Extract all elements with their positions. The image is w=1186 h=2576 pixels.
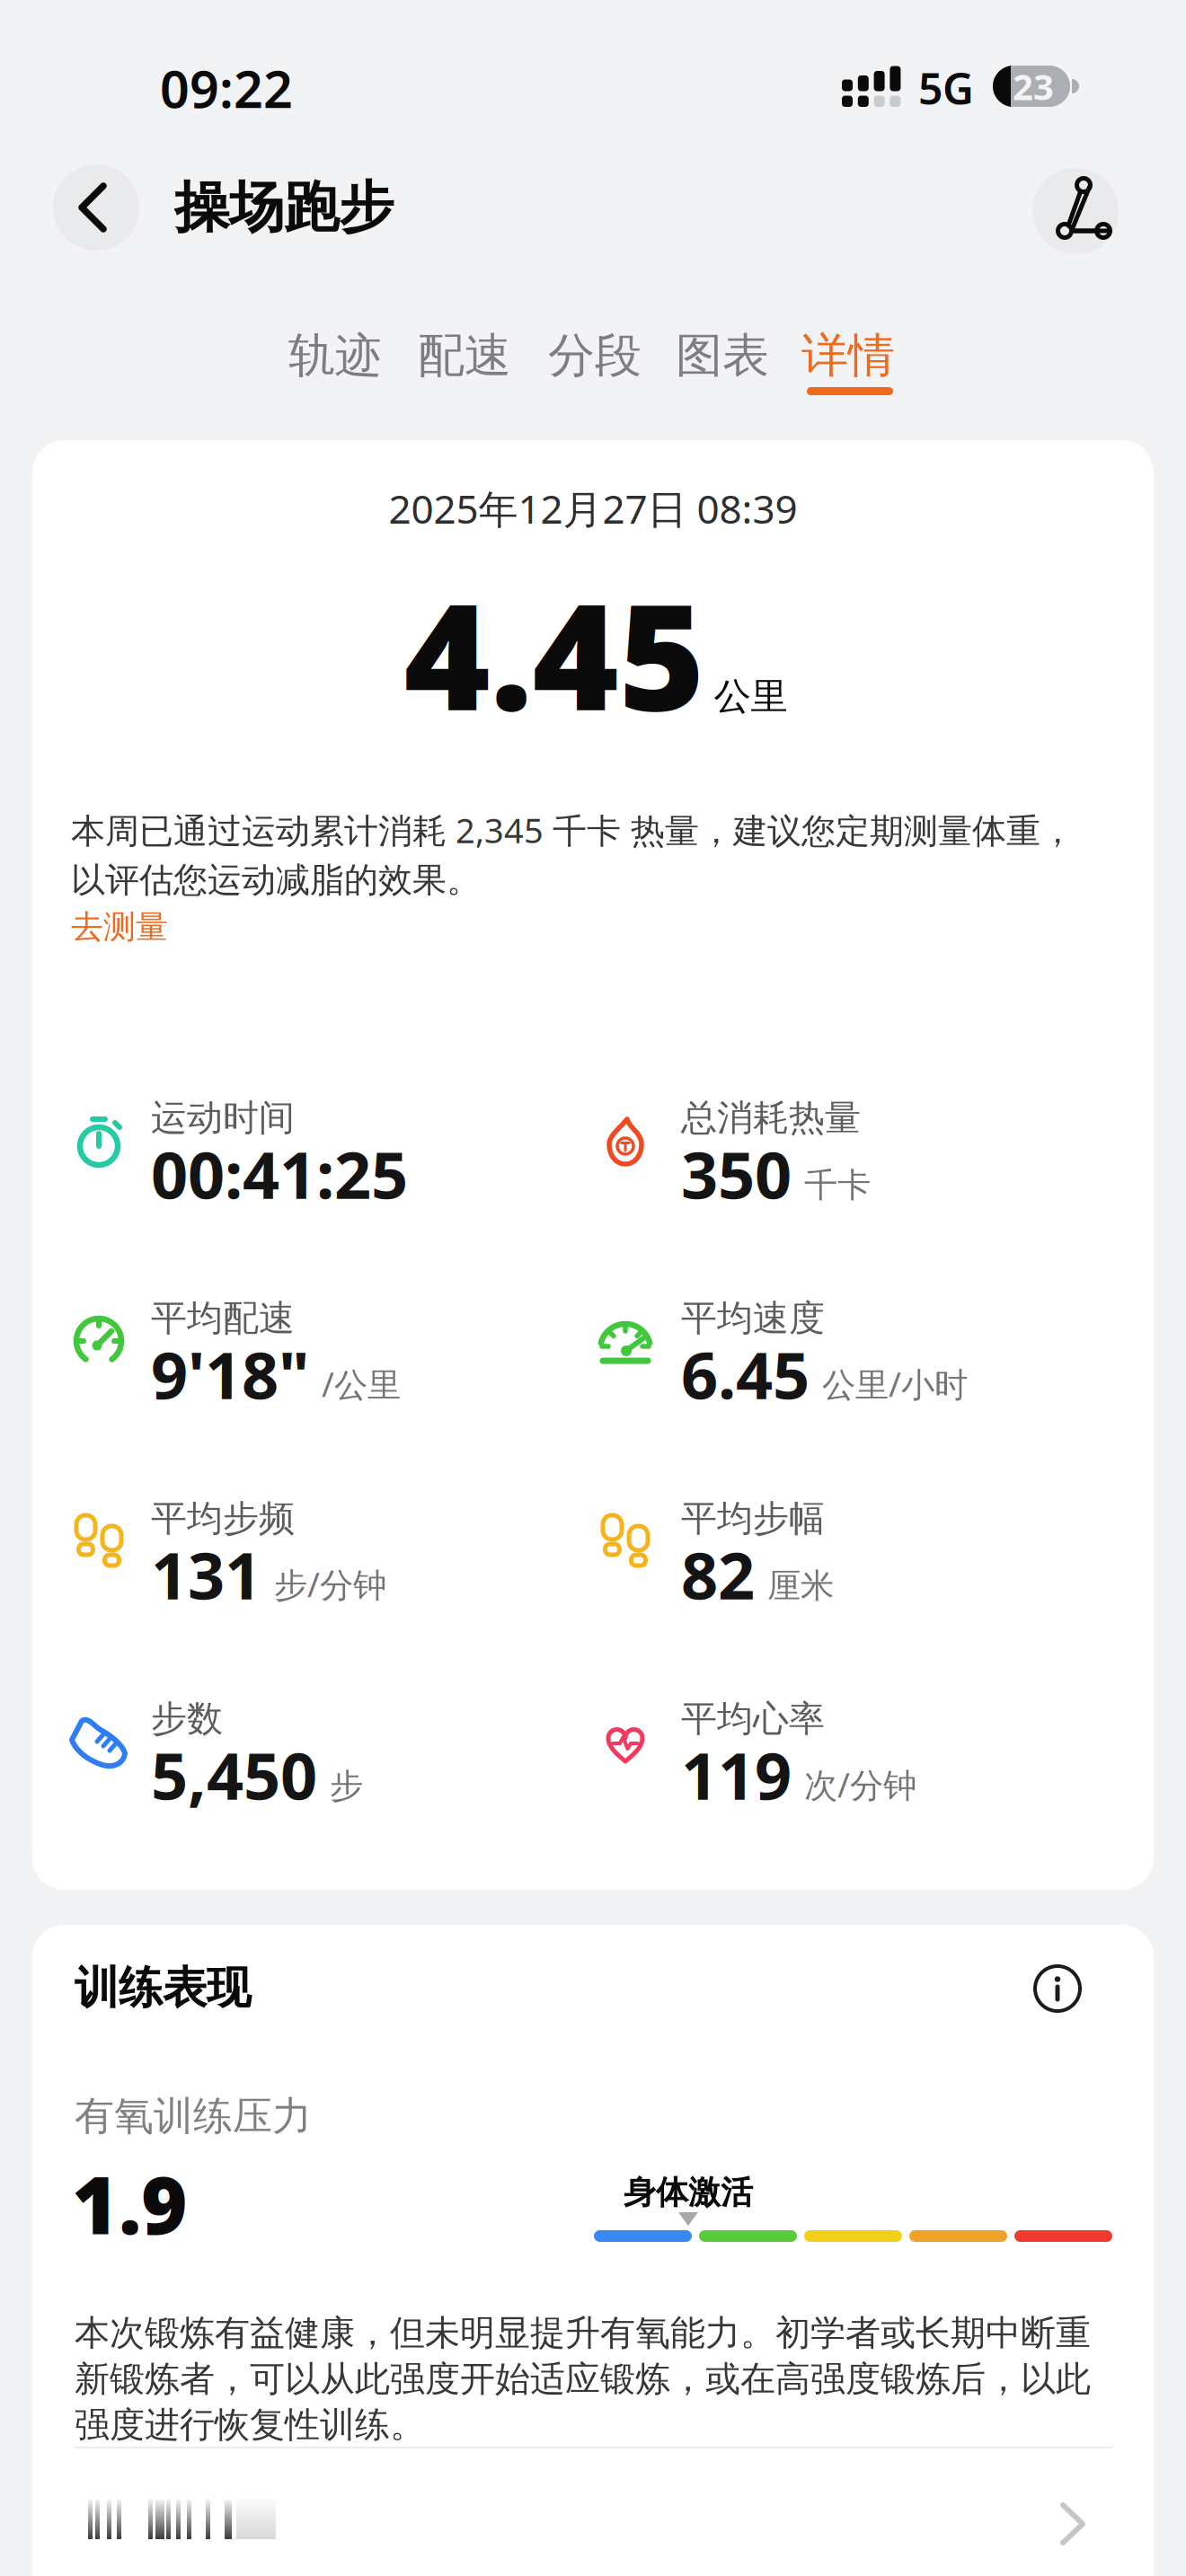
staticText: 1.9 xyxy=(72,2151,188,2256)
staticText: 详情 xyxy=(801,327,895,384)
staticText: 23 xyxy=(1013,62,1054,110)
button[interactable]: 轨迹 xyxy=(288,327,382,384)
staticText: 轨迹 xyxy=(288,327,382,384)
staticText: 操场跑步 xyxy=(174,174,394,241)
staticText: 00:41:25 xyxy=(151,1131,408,1217)
staticText: 平均心率 xyxy=(681,1697,825,1741)
staticText: 平均配速 xyxy=(151,1296,295,1340)
staticText: 公里/小时 xyxy=(822,1362,968,1406)
staticText: 步 xyxy=(330,1766,363,1807)
staticText: 9'18" xyxy=(151,1331,309,1417)
staticText: 5G xyxy=(918,59,974,117)
staticText: 6.45 xyxy=(681,1331,810,1417)
button[interactable]: Back xyxy=(53,164,139,251)
button[interactable]: 去测量 xyxy=(71,907,168,947)
button[interactable]: 详情 xyxy=(801,327,895,384)
staticText: 配速 xyxy=(418,327,511,384)
button[interactable]: Share route xyxy=(1032,168,1119,254)
staticText: 本周已通过运动累计消耗 2,345 千卡 热量，建议您定期测量体重， 以评估您运… xyxy=(71,804,1075,904)
staticText: 步/分钟 xyxy=(274,1562,386,1606)
staticText: 5,450 xyxy=(151,1732,317,1818)
button[interactable]: 分段 xyxy=(548,327,642,384)
staticText: 4.45 xyxy=(404,555,705,751)
staticText: 去测量 xyxy=(71,907,168,947)
staticText: 平均步频 xyxy=(151,1496,295,1540)
button[interactable]: 配速 xyxy=(418,327,511,384)
staticText: 千卡 xyxy=(804,1165,871,1206)
staticText: 分段 xyxy=(548,327,642,384)
staticText: 有氧训练压力 xyxy=(75,2092,312,2140)
staticText: 本次锻炼有益健康，但未明显提升有氧能力。初学者或长期中断重 新锻炼者，可以从此强… xyxy=(75,2310,1091,2448)
staticText: 09:22 xyxy=(160,54,293,122)
staticText: 平均速度 xyxy=(681,1296,825,1340)
button[interactable]: 图表 xyxy=(676,327,769,384)
staticText: 次/分钟 xyxy=(804,1762,916,1807)
staticText: 运动时间 xyxy=(151,1096,295,1140)
staticText: 350 xyxy=(681,1131,792,1217)
staticText: 训练表现 xyxy=(75,1961,251,2015)
staticText: 厘米 xyxy=(767,1565,834,1607)
staticText: 公里 xyxy=(714,674,788,719)
staticText: 图表 xyxy=(676,327,769,384)
staticText: 119 xyxy=(681,1732,792,1818)
staticText: 身体激活 xyxy=(624,2173,753,2212)
staticText: 131 xyxy=(151,1531,261,1617)
staticText: 82 xyxy=(681,1531,755,1617)
staticText: 步数 xyxy=(151,1697,223,1741)
button[interactable]: Training load details xyxy=(75,2483,1113,2563)
staticText: 2025年12月27日 08:39 xyxy=(389,482,797,535)
staticText: 总消耗热量 xyxy=(681,1096,861,1140)
button[interactable]: About training performance xyxy=(1031,1962,1084,2016)
staticText: /公里 xyxy=(322,1362,401,1406)
staticText: 平均步幅 xyxy=(681,1496,825,1540)
